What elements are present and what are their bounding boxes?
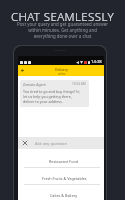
staticText: Fresh Fruits & Vegetables [42,176,87,181]
other: Close [22,140,28,146]
button[interactable]: Cakes & Bakery [24,185,100,200]
staticText: Zomato Agent [23,82,46,87]
button[interactable]: Restaurant Food [24,152,100,167]
staticText: Too tired to go and buy things? hi, let … [23,89,81,104]
staticText: Cakes & Bakery [50,193,78,198]
staticText: 10:34 AM [72,82,86,86]
staticText: online [58,72,66,76]
staticText: Post your query and get guaranteed answe… [17,21,108,39]
staticText: Delivery [55,67,68,72]
button[interactable]: Back [18,65,104,76]
staticText: Ask any question [35,141,67,146]
staticText: Restaurant Food [49,159,79,164]
staticText: CHAT SEAMLESSLY [11,9,114,25]
staticText: 14:38 [91,59,102,65]
button[interactable]: Close [18,137,104,149]
other: Back [21,69,24,72]
button[interactable]: Fresh Fruits & Vegetables [24,168,100,184]
